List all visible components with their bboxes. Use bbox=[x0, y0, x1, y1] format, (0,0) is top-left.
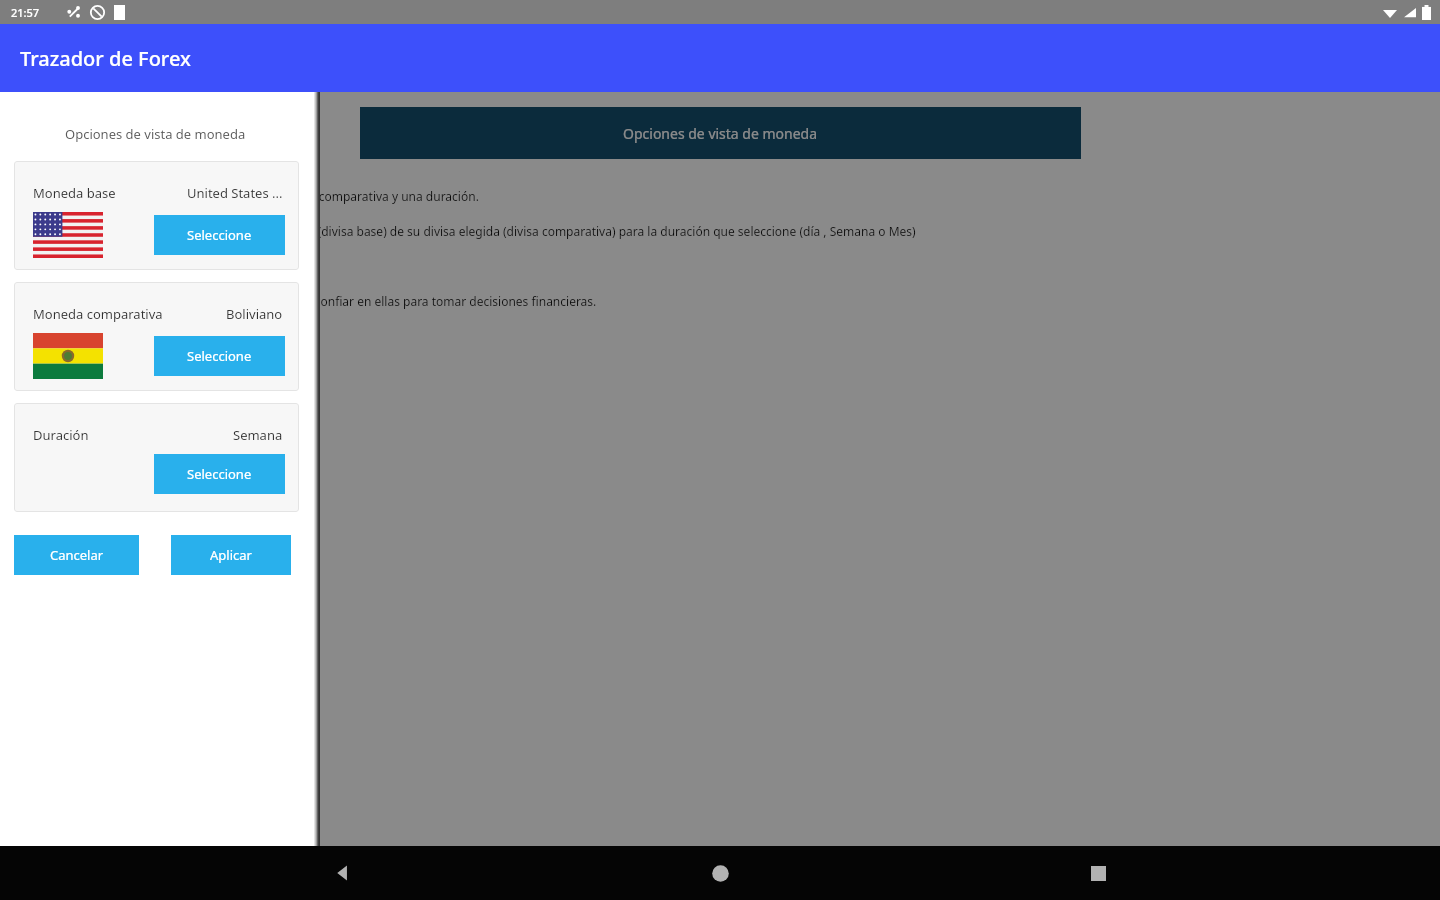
staticText: Moneda base bbox=[33, 184, 116, 202]
button[interactable]: Back bbox=[308, 846, 378, 900]
staticText: Para empezar, seleccione una divisa base… bbox=[22, 188, 479, 204]
staticText: Aplicar bbox=[210, 546, 252, 564]
staticText: United States ... bbox=[187, 184, 283, 202]
staticText: Cancelar bbox=[50, 546, 104, 564]
staticText: Seleccione bbox=[187, 347, 252, 365]
button[interactable]: Duración bbox=[14, 403, 299, 512]
button[interactable]: Moneda base bbox=[14, 161, 299, 270]
button[interactable]: Opciones de vista de moneda bbox=[360, 107, 1081, 159]
button[interactable]: Seleccione bbox=[154, 454, 285, 494]
staticText: Opciones de vista de moneda bbox=[65, 125, 246, 143]
button[interactable]: Seleccione bbox=[154, 215, 285, 255]
staticText: 21:57 bbox=[11, 5, 40, 20]
button[interactable]: Seleccione bbox=[154, 336, 285, 376]
button[interactable]: Aplicar bbox=[171, 535, 291, 575]
staticText: Opciones de vista de moneda bbox=[623, 124, 818, 143]
staticText: Seleccione bbox=[187, 465, 252, 483]
button[interactable]: Moneda comparativa bbox=[14, 282, 299, 391]
button[interactable]: Recent apps bbox=[1063, 846, 1133, 900]
staticText: Seleccione bbox=[187, 226, 252, 244]
staticText: Moneda comparativa bbox=[33, 305, 163, 323]
staticText: Los datos se actualizan cada hora a la h… bbox=[22, 258, 266, 274]
staticText: Semana bbox=[233, 426, 283, 444]
staticText: Duración bbox=[33, 426, 89, 444]
staticText: Trazador de Forex bbox=[20, 45, 191, 72]
button[interactable]: Home bbox=[685, 846, 755, 900]
staticText: Los datos son solo para uso recreativo y… bbox=[22, 293, 597, 309]
button[interactable]: Cancelar bbox=[14, 535, 139, 575]
staticText: Boliviano bbox=[226, 305, 283, 323]
staticText: El gráfico muestra el valor del dólar es… bbox=[22, 223, 916, 239]
